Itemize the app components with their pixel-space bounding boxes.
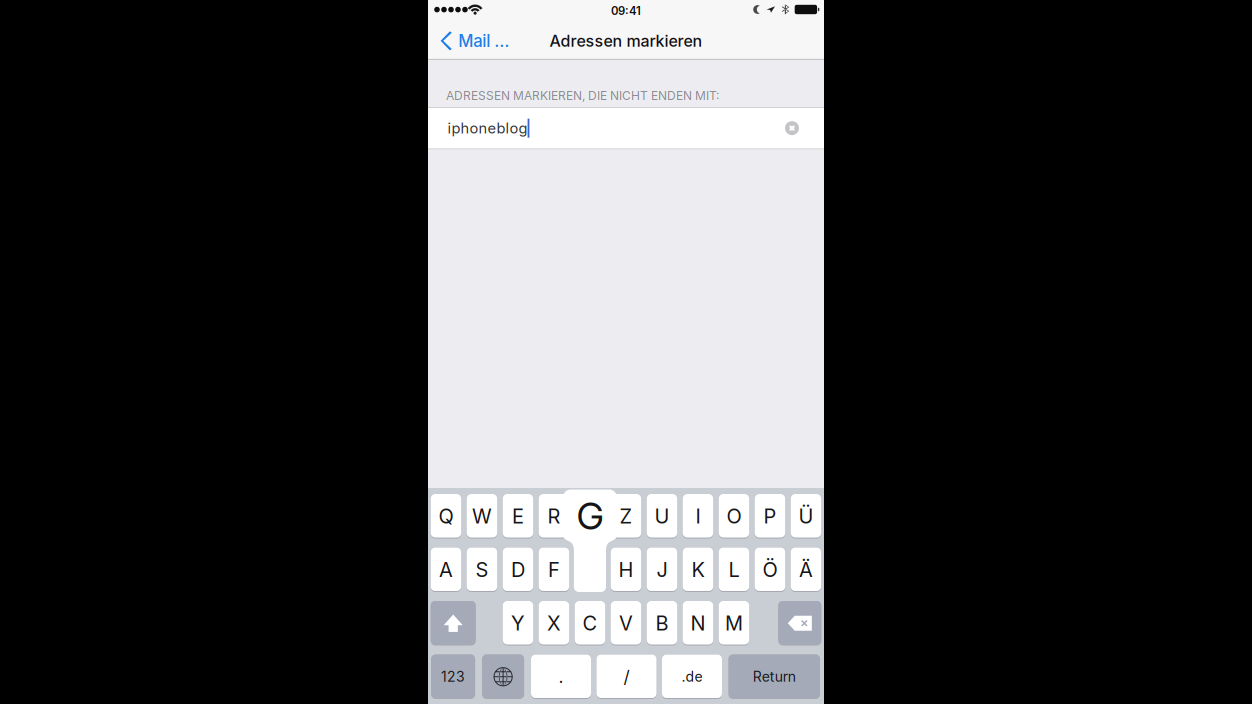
button[interactable]: / [596,654,656,699]
button[interactable]: E [503,494,533,538]
button[interactable]: W [467,494,497,538]
button[interactable]: Ü [791,494,821,538]
staticText: C [582,611,597,635]
button[interactable]: .de [662,654,722,699]
staticText: K [691,558,704,582]
staticText: Return [753,668,796,685]
staticText: / [623,666,629,687]
button[interactable]: K [683,547,713,592]
staticText: Adressen markieren [549,31,702,51]
staticText: A [439,558,453,582]
button[interactable]: Return [728,654,820,699]
staticText: V [619,611,633,635]
button[interactable]: A [431,547,461,592]
staticText: Ä [799,558,813,582]
button[interactable]: Q [431,494,461,538]
staticText: Z [619,504,632,528]
button[interactable]: Y [503,601,533,645]
staticText: X [547,611,561,635]
button[interactable]: L [719,547,749,592]
button[interactable]: B [647,601,677,645]
button[interactable]: R [539,494,569,538]
button[interactable]: N [683,601,713,645]
button[interactable]: V [611,601,641,645]
button[interactable]: Z [611,494,641,538]
button[interactable]: U [647,494,677,538]
button[interactable]: Ä [791,547,821,592]
staticText: M [725,611,743,635]
staticText: Mail … [458,31,509,51]
button[interactable]: D [503,547,533,592]
button[interactable]: C [575,601,605,645]
button[interactable]: . [531,654,591,699]
staticText: T [583,504,596,528]
button[interactable]: Ö [755,547,785,592]
staticText: G [576,493,603,539]
staticText: E [512,504,524,528]
staticText: Ü [798,504,813,528]
staticText: Ö [762,558,777,582]
button[interactable]: H [611,547,641,592]
staticText: Y [511,611,525,635]
staticText: 123 [441,668,465,685]
staticText: ADRESSEN MARKIEREN, DIE NICHT ENDEN MIT: [446,88,719,103]
staticText: S [475,558,488,582]
button[interactable]: 123 [431,654,475,699]
staticText: P [763,504,776,528]
button[interactable]: I [683,494,713,538]
staticText: H [618,558,633,582]
staticText: U [654,504,669,528]
staticText: F [548,558,560,582]
button[interactable]: Delete [778,601,821,645]
staticText: N [690,611,705,635]
button[interactable]: O [719,494,749,538]
button[interactable]: M [719,601,749,645]
button[interactable]: Clear text [775,107,799,149]
button[interactable]: Shift [431,601,476,645]
staticText: L [728,558,739,582]
staticText: J [656,558,667,582]
staticText: . [558,666,563,687]
staticText: .de [681,668,702,685]
staticText: B [655,611,668,635]
staticText: W [472,504,492,528]
staticText: D [511,558,525,582]
staticText: O [726,504,741,528]
staticText: iphoneblog [448,119,528,137]
staticText: Q [438,504,453,528]
button[interactable]: T [575,494,605,538]
button[interactable]: X [539,601,569,645]
staticText: 09:41 [611,4,641,18]
button[interactable]: Next keyboard [482,654,524,699]
button[interactable]: Mail … [428,22,517,60]
staticText: I [695,504,700,528]
button[interactable]: F [539,547,569,592]
button[interactable]: P [755,494,785,538]
button[interactable]: J [647,547,677,592]
button[interactable]: S [467,547,497,592]
staticText: R [547,504,560,528]
